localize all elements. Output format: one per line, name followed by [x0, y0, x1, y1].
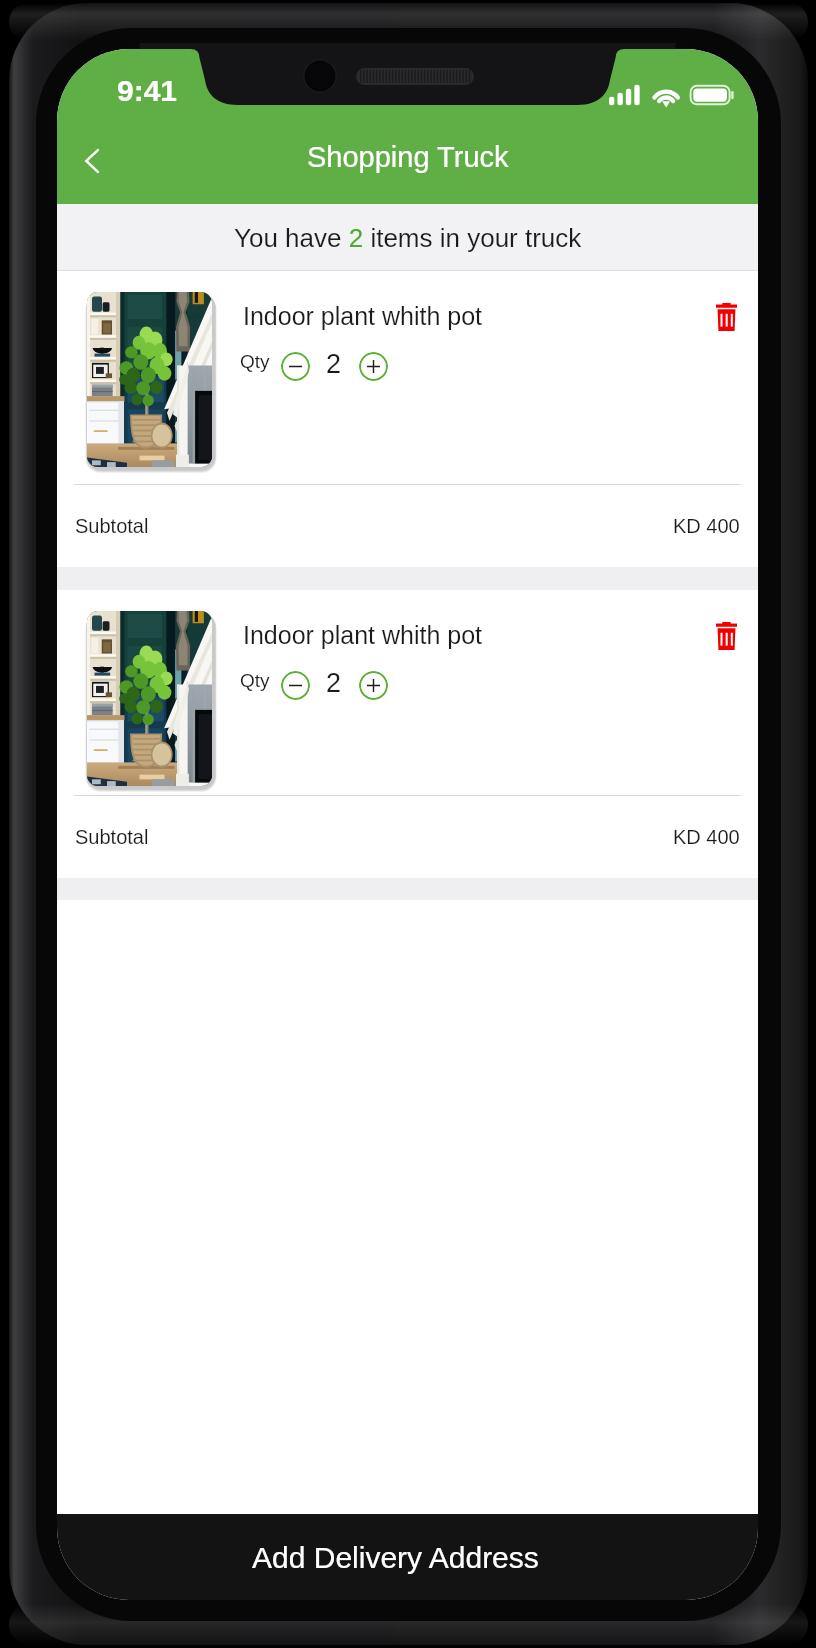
button[interactable]: Add Delivery Address [57, 1514, 758, 1600]
staticText: 2 [326, 349, 342, 379]
button[interactable]: Delete item [703, 294, 749, 340]
staticText: Qty [240, 351, 270, 372]
button[interactable]: Delete item [703, 613, 749, 659]
staticText: You have 2 items in your truck [234, 223, 582, 252]
button[interactable]: Increase quantity [359, 671, 388, 700]
staticText: KD 400 [673, 515, 740, 537]
staticText: 9:41 [117, 74, 178, 108]
staticText: Indoor plant whith pot [243, 302, 483, 330]
staticText: Subtotal [75, 515, 149, 537]
button[interactable]: Back [64, 133, 120, 189]
staticText: Add Delivery Address [252, 1541, 539, 1575]
staticText: Shopping Truck [307, 141, 509, 173]
staticText: Qty [240, 670, 270, 691]
staticText: Subtotal [75, 826, 149, 848]
button[interactable]: Decrease quantity [281, 352, 310, 381]
button[interactable]: Decrease quantity [281, 671, 310, 700]
staticText: Indoor plant whith pot [243, 621, 483, 649]
staticText: 2 [326, 668, 342, 698]
staticText: KD 400 [673, 826, 740, 848]
button[interactable]: Increase quantity [359, 352, 388, 381]
